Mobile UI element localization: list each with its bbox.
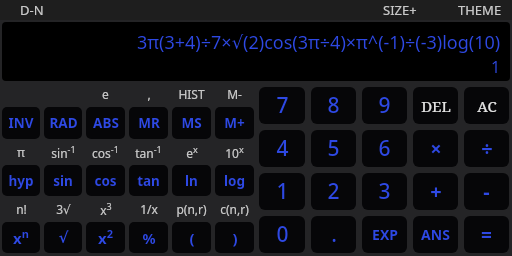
staticText: 6 bbox=[378, 134, 391, 163]
button[interactable]: MR bbox=[129, 107, 168, 139]
button[interactable]: 1 bbox=[259, 173, 305, 210]
button[interactable]: ÷ bbox=[464, 130, 509, 167]
button[interactable]: ABS bbox=[86, 107, 125, 139]
staticText: hyp bbox=[8, 172, 34, 190]
staticText: p(n,r) bbox=[176, 201, 207, 217]
staticText: 8 bbox=[327, 91, 340, 120]
staticText: = bbox=[481, 222, 492, 248]
button[interactable]: tan bbox=[129, 165, 168, 196]
button[interactable]: log bbox=[215, 165, 254, 196]
staticText: ÷ bbox=[481, 135, 493, 162]
staticText: 1 bbox=[491, 56, 501, 78]
staticText: x2 bbox=[98, 226, 113, 249]
button[interactable]: √ bbox=[44, 222, 82, 253]
button[interactable]: % bbox=[129, 222, 168, 253]
staticText: . bbox=[331, 220, 337, 249]
staticText: π bbox=[17, 144, 25, 160]
button[interactable]: 4 bbox=[259, 130, 305, 167]
staticText: 10x bbox=[225, 143, 244, 161]
button[interactable]: 5 bbox=[311, 130, 356, 167]
button[interactable]: x2 bbox=[86, 222, 125, 253]
button[interactable]: ) bbox=[215, 222, 254, 253]
staticText: MS bbox=[181, 114, 202, 132]
staticText: ln bbox=[185, 172, 198, 190]
staticText: 7 bbox=[276, 91, 289, 120]
staticText: - bbox=[483, 178, 490, 205]
staticText: DEL bbox=[421, 96, 451, 116]
button[interactable]: AC bbox=[464, 87, 509, 124]
staticText: % bbox=[142, 228, 156, 248]
button[interactable]: MS bbox=[172, 107, 211, 139]
button[interactable]: = bbox=[464, 216, 509, 253]
button[interactable]: xn bbox=[2, 222, 40, 253]
button[interactable]: - bbox=[464, 173, 509, 210]
staticText: 3√ bbox=[56, 201, 71, 217]
button[interactable]: + bbox=[413, 173, 458, 210]
staticText: log bbox=[224, 172, 245, 190]
button[interactable]: ln bbox=[172, 165, 211, 196]
staticText: RAD bbox=[49, 114, 78, 132]
staticText: ex bbox=[186, 143, 198, 161]
staticText: 9 bbox=[378, 91, 391, 120]
staticText: sin bbox=[53, 172, 73, 190]
button[interactable]: M+ bbox=[215, 107, 254, 139]
staticText: ( bbox=[189, 228, 195, 248]
button[interactable]: sin bbox=[44, 165, 82, 196]
staticText: INV bbox=[8, 114, 34, 132]
staticText: M+ bbox=[224, 114, 245, 132]
staticText: 3π(3+4)÷7×√(2)cos(3π÷4)×π^(-1)÷(-3)log(1… bbox=[137, 30, 501, 55]
staticText: tan bbox=[137, 172, 160, 190]
staticText: 1/x bbox=[140, 201, 158, 217]
button[interactable]: 6 bbox=[362, 130, 407, 167]
staticText: AC bbox=[477, 96, 497, 116]
staticText: × bbox=[430, 135, 442, 162]
staticText: 5 bbox=[327, 134, 340, 163]
button[interactable]: 7 bbox=[259, 87, 305, 124]
staticText: x3 bbox=[100, 200, 112, 218]
button[interactable]: 0 bbox=[259, 216, 305, 253]
staticText: n! bbox=[16, 201, 27, 217]
button[interactable]: ( bbox=[172, 222, 211, 253]
button[interactable]: . bbox=[311, 216, 356, 253]
staticText: ANS bbox=[421, 225, 450, 244]
button[interactable]: D-N bbox=[20, 1, 44, 19]
staticText: tan-1 bbox=[135, 143, 162, 161]
button[interactable]: 9 bbox=[362, 87, 407, 124]
button[interactable]: SIZE+ bbox=[383, 1, 417, 19]
staticText: sin-1 bbox=[51, 143, 76, 161]
staticText: MR bbox=[138, 114, 160, 132]
button[interactable]: EXP bbox=[362, 216, 407, 253]
staticText: , bbox=[147, 86, 151, 102]
button[interactable]: INV bbox=[2, 107, 40, 139]
button[interactable]: DEL bbox=[413, 87, 458, 124]
staticText: M- bbox=[227, 86, 242, 102]
staticText: 2 bbox=[327, 177, 340, 206]
staticText: EXP bbox=[372, 225, 398, 244]
staticText: ) bbox=[232, 228, 238, 248]
staticText: HIST bbox=[178, 86, 205, 102]
staticText: 3 bbox=[378, 177, 391, 206]
staticText: 1 bbox=[276, 177, 289, 206]
staticText: e bbox=[102, 86, 109, 102]
button[interactable]: THEME bbox=[458, 1, 502, 19]
button[interactable]: 2 bbox=[311, 173, 356, 210]
staticText: cos bbox=[94, 172, 117, 190]
button[interactable]: cos bbox=[86, 165, 125, 196]
staticText: c(n,r) bbox=[220, 201, 249, 217]
staticText: cos-1 bbox=[92, 143, 119, 161]
staticText: √ bbox=[58, 229, 69, 246]
button[interactable]: hyp bbox=[2, 165, 40, 196]
staticText: xn bbox=[13, 226, 29, 249]
staticText: 0 bbox=[276, 220, 289, 249]
button[interactable]: × bbox=[413, 130, 458, 167]
staticText: + bbox=[430, 178, 442, 205]
button[interactable]: 3 bbox=[362, 173, 407, 210]
staticText: ABS bbox=[93, 114, 119, 132]
button[interactable]: 8 bbox=[311, 87, 356, 124]
button[interactable]: ANS bbox=[413, 216, 458, 253]
button[interactable]: RAD bbox=[44, 107, 82, 139]
staticText: 4 bbox=[276, 134, 289, 163]
